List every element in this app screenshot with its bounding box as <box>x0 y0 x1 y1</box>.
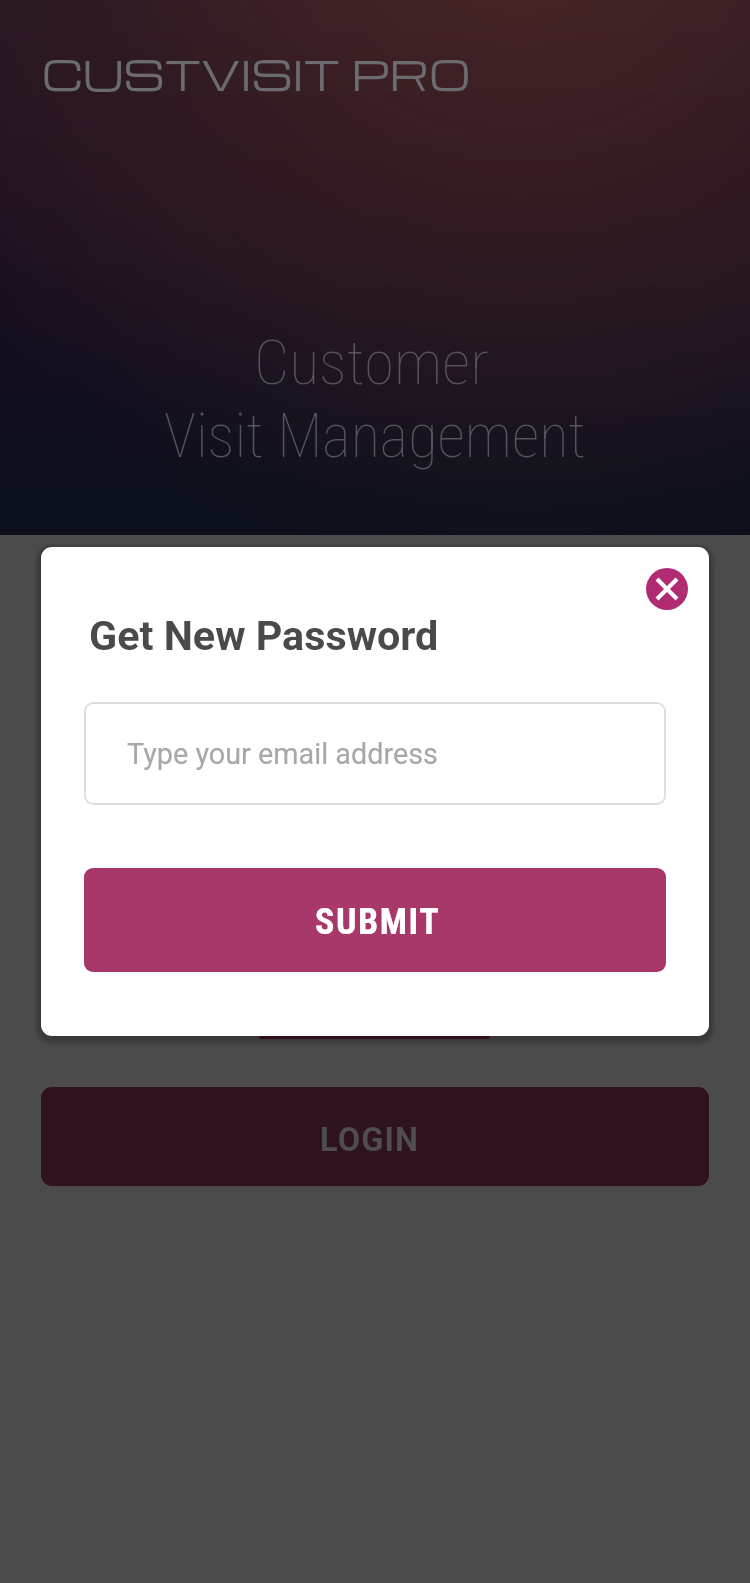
button[interactable]: Type your email address <box>84 702 666 805</box>
button[interactable]: LOGIN <box>41 1087 709 1186</box>
staticText: CUSTVISIT PRO <box>42 46 471 102</box>
staticText: SUBMIT <box>315 901 441 943</box>
staticText: Visit Management <box>164 401 586 472</box>
button[interactable]: Close <box>646 568 688 610</box>
staticText: Type your email address <box>127 737 438 771</box>
button[interactable]: SUBMIT <box>84 868 666 972</box>
staticText: LOGIN <box>320 1121 420 1159</box>
staticText: Get New Password <box>89 612 439 660</box>
staticText: Customer <box>254 326 489 399</box>
